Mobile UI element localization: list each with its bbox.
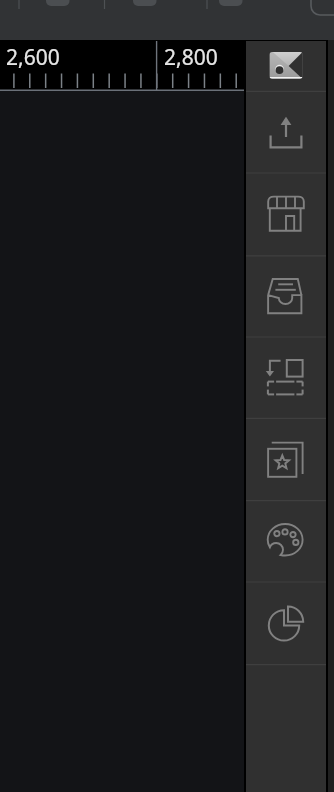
button[interactable]: App logo	[246, 41, 326, 89]
button[interactable]: Collections	[246, 436, 326, 484]
button[interactable]: Move into frame	[246, 354, 326, 402]
button[interactable]: Store	[246, 190, 326, 238]
button[interactable]: Archive	[246, 272, 326, 320]
button[interactable]: Colour palette	[246, 517, 326, 565]
button[interactable]: Statistics	[246, 599, 326, 647]
staticText: 2,800	[164, 43, 218, 72]
button[interactable]: Upload	[246, 109, 326, 157]
staticText: 2,600	[6, 43, 60, 72]
